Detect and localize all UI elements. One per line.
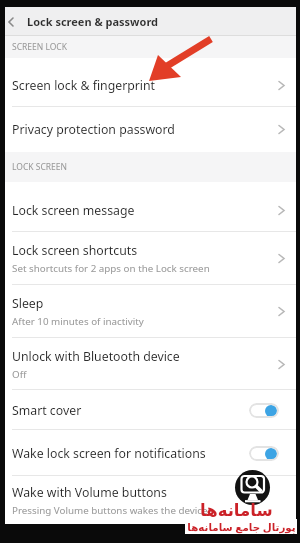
staticText: Lock screen & password xyxy=(27,14,159,29)
staticText: Set shortcuts for 2 apps on the Lock scr… xyxy=(12,262,210,275)
button[interactable]: Smart cover xyxy=(5,390,296,430)
button[interactable]: Lock screen message xyxy=(5,182,296,232)
staticText: پورتال جامع سامانه‌ها xyxy=(187,520,296,534)
staticText: Lock screen shortcuts xyxy=(12,242,138,259)
button[interactable] xyxy=(249,403,279,418)
staticText: سامانه‌ها xyxy=(200,501,273,518)
button[interactable]: Wake with Volume buttons xyxy=(5,476,296,524)
button[interactable]: Sleep xyxy=(5,285,296,338)
staticText: SCREEN LOCK xyxy=(12,41,68,53)
staticText: Wake with Volume buttons xyxy=(12,484,167,501)
staticText: Screen lock & fingerprint xyxy=(12,77,156,94)
button[interactable]: Unlock with Bluetooth device xyxy=(5,338,296,390)
staticText: Lock screen message xyxy=(12,202,135,219)
button[interactable] xyxy=(249,446,279,461)
button[interactable]: Lock screen shortcuts xyxy=(5,232,296,285)
button[interactable] xyxy=(5,7,17,36)
staticText: LOCK SCREEN xyxy=(12,161,68,173)
staticText: Off xyxy=(12,368,27,381)
button[interactable]: Privacy protection password xyxy=(5,107,296,152)
button[interactable]: Screen lock & fingerprint xyxy=(5,58,296,107)
staticText: Pressing Volume buttons wakes the device xyxy=(12,504,208,517)
button[interactable]: Wake lock screen for notifications xyxy=(5,430,296,476)
staticText: Sleep xyxy=(12,295,44,312)
staticText: Privacy protection password xyxy=(12,121,175,138)
staticText: Wake lock screen for notifications xyxy=(12,445,206,462)
staticText: Unlock with Bluetooth device xyxy=(12,348,180,365)
staticText: After 10 minutes of inactivity xyxy=(12,315,144,328)
staticText: Smart cover xyxy=(12,402,82,419)
